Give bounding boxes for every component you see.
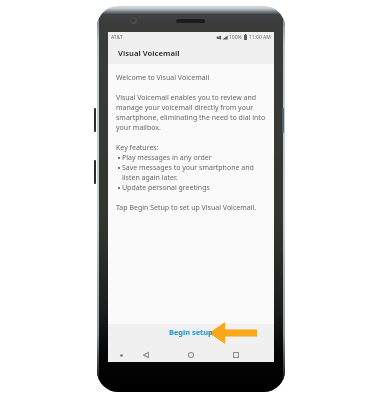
button[interactable]: Back [138,347,154,363]
staticText: Visual Voicemail [118,48,180,58]
staticText: smartphone, eliminating the need to dial… [116,113,266,123]
staticText: Play messages in any order [122,153,212,163]
staticText: manage your voicemail directly from your [116,103,254,113]
button[interactable]: Recent apps [228,347,244,363]
staticText: Tap Begin Setup to set up Visual Voicema… [116,203,257,213]
staticText: Key features: [116,143,159,153]
staticText: Visual Voicemail enables you to review a… [116,93,257,103]
staticText: Update personal greetings [122,183,210,193]
button[interactable]: Home [183,347,199,363]
staticText: listen again later. [122,173,178,183]
staticText: Welcome to Visual Voicemail [116,73,210,83]
staticText: AT&T [111,34,123,41]
staticText: Save messages to your smartphone and [122,163,254,173]
staticText: 100% [229,34,242,41]
button[interactable]: Begin setup [169,326,213,338]
staticText: Begin setup [169,327,213,337]
staticText: 11:00 AM [249,34,271,41]
staticText: your mailbox. [116,123,161,133]
